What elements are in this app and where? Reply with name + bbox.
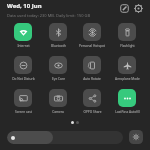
staticText: Aeroplane Mode [115, 77, 140, 81]
button[interactable]: Screen cast [14, 89, 32, 107]
staticText: Data used today: 230 MB. Daily limit: 15… [7, 13, 91, 18]
staticText: Do Not Disturb [12, 77, 35, 81]
staticText: Internet [17, 44, 30, 48]
button[interactable]: Personal Hotspot [83, 23, 101, 41]
staticText: Bluetooth [51, 44, 66, 48]
button[interactable]: Auto brightness [129, 130, 143, 144]
button[interactable]: LastPass Autofill [118, 89, 136, 107]
button[interactable]: Edit tiles [118, 2, 130, 14]
staticText: Wed, 10 Jun [7, 2, 42, 10]
button[interactable]: Eye Care [49, 56, 67, 74]
button[interactable]: Auto Rotate [83, 56, 101, 74]
button[interactable]: Brightness [7, 131, 123, 144]
staticText: Auto Rotate [83, 77, 101, 81]
button[interactable]: OPPO Share [83, 89, 101, 107]
button[interactable]: Aeroplane Mode [118, 56, 136, 74]
staticText: Flashlight [120, 44, 135, 48]
staticText: Personal Hotspot [79, 44, 105, 48]
staticText: Eye Care [52, 77, 65, 81]
staticText: LastPass Autofill [115, 110, 140, 114]
button[interactable]: Internet [14, 23, 32, 41]
button[interactable]: Flashlight [118, 23, 136, 41]
staticText: Screen cast [15, 110, 32, 114]
staticText: OPPO Share [83, 110, 102, 114]
staticText: Camera [52, 110, 64, 114]
button[interactable]: Camera [49, 89, 67, 107]
button[interactable]: Do Not Disturb [14, 56, 32, 74]
button[interactable]: Bluetooth [49, 23, 67, 41]
button[interactable]: Settings [132, 2, 144, 14]
